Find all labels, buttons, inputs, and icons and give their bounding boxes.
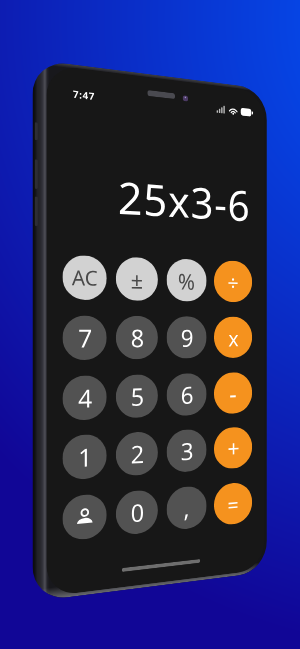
staticText: - (229, 376, 237, 410)
button[interactable]: 4 (62, 375, 107, 421)
staticText: % (178, 266, 196, 296)
staticText: 7:47 (73, 87, 96, 103)
button[interactable]: 6 (166, 373, 207, 417)
staticText: 25x3-6 (46, 160, 250, 233)
button[interactable]: = (214, 481, 252, 526)
button[interactable]: 3 (166, 428, 207, 473)
staticText: 9 (181, 321, 194, 354)
button[interactable]: - (214, 372, 252, 414)
button[interactable]: 5 (116, 374, 158, 419)
staticText: 1 (78, 439, 92, 474)
button[interactable]: AC (62, 255, 107, 300)
button[interactable]: 1 (62, 433, 107, 481)
staticText: , (183, 491, 190, 524)
button[interactable]: ± (116, 256, 158, 301)
button[interactable]: x (214, 316, 252, 358)
button[interactable]: 2 (116, 431, 158, 477)
staticText: 0 (131, 495, 144, 529)
staticText: 2 (131, 437, 144, 471)
button[interactable]: , (166, 485, 207, 531)
staticText: ÷ (227, 267, 239, 296)
staticText: 8 (131, 321, 144, 354)
button[interactable]: 9 (166, 316, 207, 359)
button[interactable]: 8 (116, 316, 158, 360)
staticText: ± (131, 264, 143, 295)
staticText: 5 (131, 379, 144, 413)
staticText: 4 (78, 380, 92, 415)
button[interactable]: + (214, 426, 252, 470)
staticText: 6 (181, 378, 194, 411)
staticText: + (227, 432, 240, 464)
staticText: AC (72, 263, 99, 292)
staticText: = (227, 489, 239, 519)
button[interactable]: 0 (116, 489, 158, 536)
button[interactable]: ÷ (214, 260, 252, 302)
staticText: 3 (181, 434, 194, 467)
button[interactable]: Profile (62, 493, 107, 541)
staticText: x (228, 323, 239, 352)
button[interactable]: % (166, 258, 207, 302)
button[interactable]: 7 (62, 315, 107, 360)
staticText: 7 (78, 321, 92, 355)
